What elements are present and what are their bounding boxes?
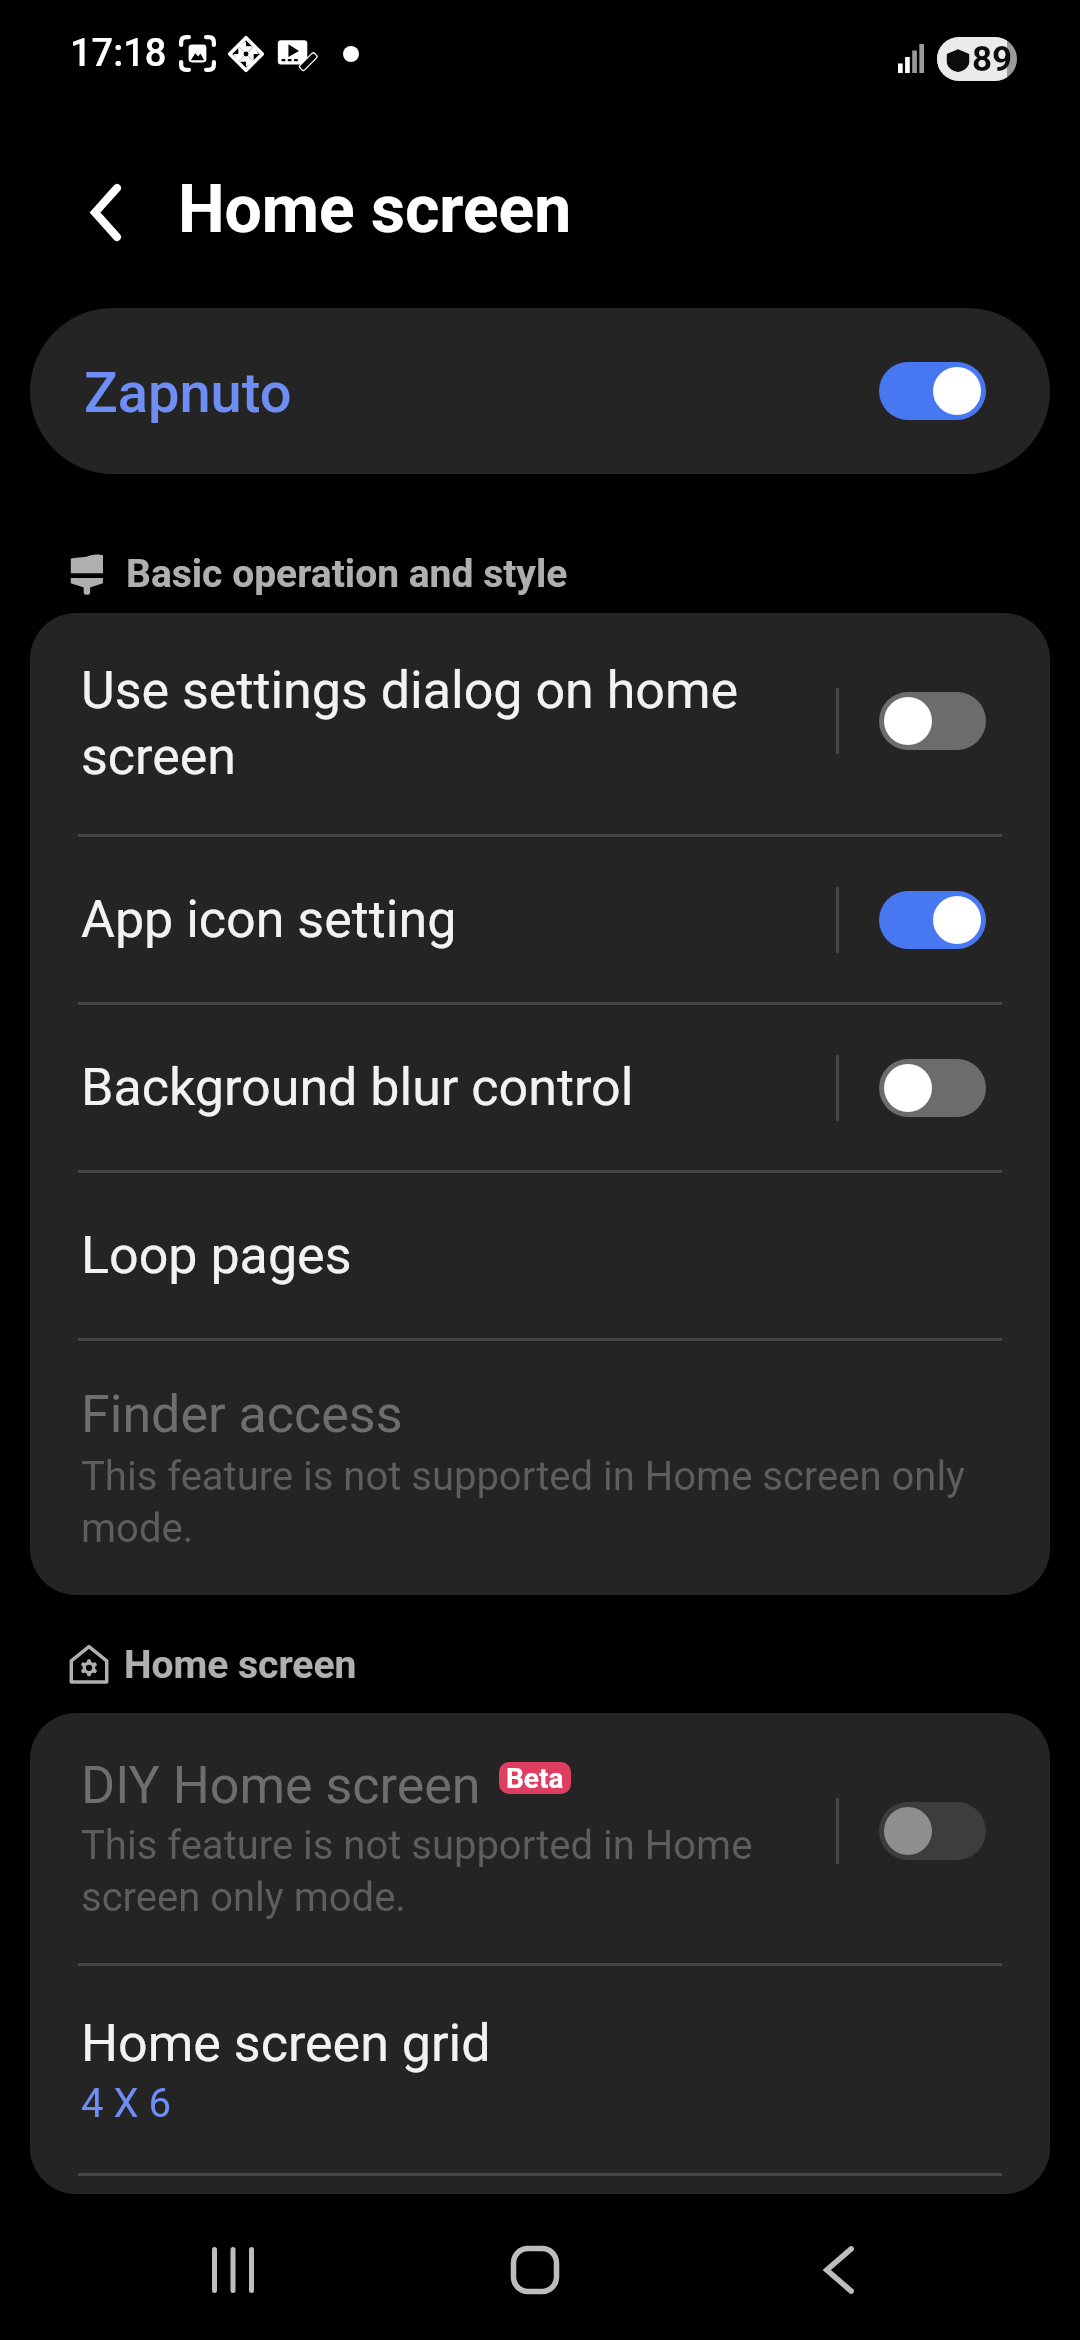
staticText: Basic operation and style bbox=[126, 551, 568, 597]
staticText: Zapnuto bbox=[84, 360, 292, 426]
staticText: This feature is not supported in Home sc… bbox=[81, 1453, 981, 1552]
staticText: This feature is not supported in Home sc… bbox=[81, 1822, 761, 1921]
staticText: 89 bbox=[972, 39, 1013, 80]
button[interactable]: Background blur control bbox=[30, 1005, 1050, 1170]
button[interactable]: Loop pages bbox=[30, 1173, 1050, 1338]
button[interactable]: Home screen grid bbox=[30, 1966, 1050, 2173]
button[interactable]: App icon setting bbox=[30, 837, 1050, 1002]
button[interactable]: Recents bbox=[178, 2215, 288, 2325]
button[interactable]: Home bbox=[480, 2215, 590, 2325]
button[interactable]: Toggle bbox=[879, 692, 986, 750]
staticText: Beta bbox=[506, 1762, 564, 1794]
button[interactable]: Back bbox=[75, 182, 135, 242]
button[interactable]: Toggle bbox=[879, 362, 986, 420]
staticText: App icon setting bbox=[81, 889, 457, 950]
button[interactable]: Finder access bbox=[30, 1341, 1050, 1595]
staticText: Background blur control bbox=[81, 1057, 634, 1118]
staticText: Home screen bbox=[124, 1642, 357, 1688]
staticText: Loop pages bbox=[81, 1225, 352, 1286]
button[interactable]: Toggle bbox=[879, 1059, 986, 1117]
button[interactable]: Zapnuto bbox=[30, 308, 1050, 474]
staticText: Finder access bbox=[81, 1384, 403, 1445]
button[interactable]: Toggle bbox=[879, 1802, 986, 1860]
button[interactable]: Toggle bbox=[879, 891, 986, 949]
staticText: DIY Home screen bbox=[81, 1755, 481, 1816]
staticText: Home screen grid bbox=[81, 2013, 491, 2074]
button[interactable]: DIY Home screen bbox=[30, 1713, 1050, 1963]
button[interactable]: Use settings dialog on home screen bbox=[30, 613, 1050, 834]
button[interactable]: Back bbox=[784, 2215, 894, 2325]
staticText: Use settings dialog on home screen bbox=[81, 660, 761, 787]
staticText: 4 X 6 bbox=[81, 2080, 171, 2127]
staticText: Home screen bbox=[178, 171, 572, 248]
staticText: 17:18 bbox=[70, 31, 167, 76]
